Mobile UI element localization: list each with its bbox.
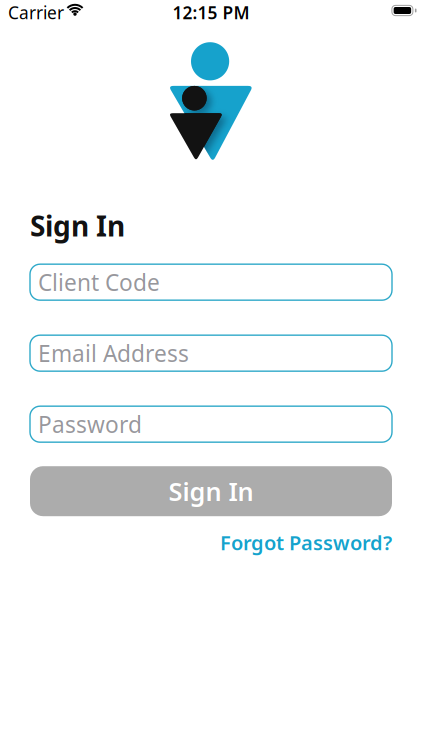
- button[interactable]: Forgot Password?: [220, 529, 392, 556]
- staticText: Forgot Password?: [220, 529, 392, 556]
- staticText: Email Address: [38, 338, 189, 368]
- button[interactable]: Client Code: [30, 264, 392, 300]
- button[interactable]: Sign In: [30, 466, 392, 516]
- staticText: 12:15 PM: [172, 1, 249, 24]
- staticText: Sign In: [168, 474, 253, 508]
- staticText: Sign In: [30, 207, 125, 244]
- button[interactable]: Email Address: [30, 335, 392, 371]
- staticText: Carrier: [8, 1, 64, 24]
- button[interactable]: Password: [30, 406, 392, 442]
- staticText: Client Code: [38, 267, 160, 297]
- staticText: Password: [38, 409, 142, 439]
